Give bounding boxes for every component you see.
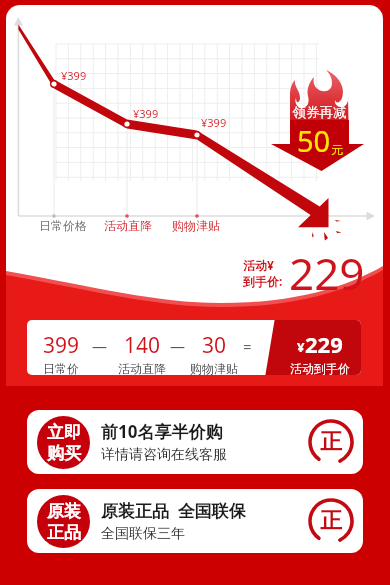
staticText: ¥399 [201, 115, 227, 130]
staticText: 日常价 [43, 361, 79, 375]
staticText: — [92, 336, 108, 356]
button[interactable]: 领券再减50元 [268, 60, 366, 175]
staticText: = [243, 336, 252, 356]
staticText: 购买 [47, 443, 81, 464]
staticText: 立即 [47, 422, 81, 443]
staticText: ¥399 [133, 106, 159, 121]
other: Genuine [307, 418, 355, 466]
staticText: 正品 [47, 522, 81, 543]
staticText: 活动到手价 [290, 361, 350, 375]
staticText: 活动¥ [243, 257, 274, 273]
staticText: 原装正品 全国联保 [101, 499, 246, 522]
staticText: ¥ [297, 338, 305, 356]
staticText: 正 [320, 428, 342, 456]
staticText: ¥399 [61, 68, 87, 83]
staticText: 购物津贴 [172, 218, 220, 233]
staticText: 140 [124, 331, 161, 360]
staticText: 详情请咨询在线客服 [101, 446, 227, 464]
staticText: 229 [289, 243, 365, 303]
staticText: 原装 [47, 501, 81, 522]
staticText: 30 [202, 331, 227, 360]
button[interactable]: 立即 [27, 410, 363, 474]
staticText: 购物津贴 [190, 361, 238, 375]
staticText: 日常价格 [39, 218, 87, 233]
staticText: 前10名享半价购 [101, 420, 223, 443]
staticText: 50 [297, 121, 331, 160]
staticText: 领券再减 [289, 104, 350, 121]
staticText: 元 [331, 142, 343, 157]
staticText: 399 [43, 331, 80, 360]
staticText: 正 [320, 507, 342, 535]
staticText: — [170, 336, 186, 356]
other: Genuine [307, 497, 355, 545]
staticText: 229 [305, 329, 343, 359]
button[interactable]: 原装 [27, 489, 363, 553]
staticText: 活动直降 [104, 218, 152, 233]
staticText: 全国联保三年 [101, 525, 185, 543]
staticText: 活动直降 [118, 361, 166, 375]
staticText: 到手价: [243, 273, 283, 289]
button[interactable]: 399 [27, 320, 361, 375]
